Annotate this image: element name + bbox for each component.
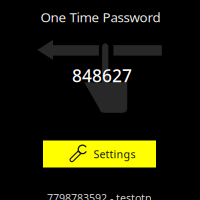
staticText: Settings (93, 147, 135, 161)
button[interactable]: Settings (43, 140, 156, 167)
staticText: One Time Password (40, 8, 160, 26)
staticText: 7798783592 - testotp (47, 191, 152, 200)
staticText: 848627 (72, 64, 132, 87)
